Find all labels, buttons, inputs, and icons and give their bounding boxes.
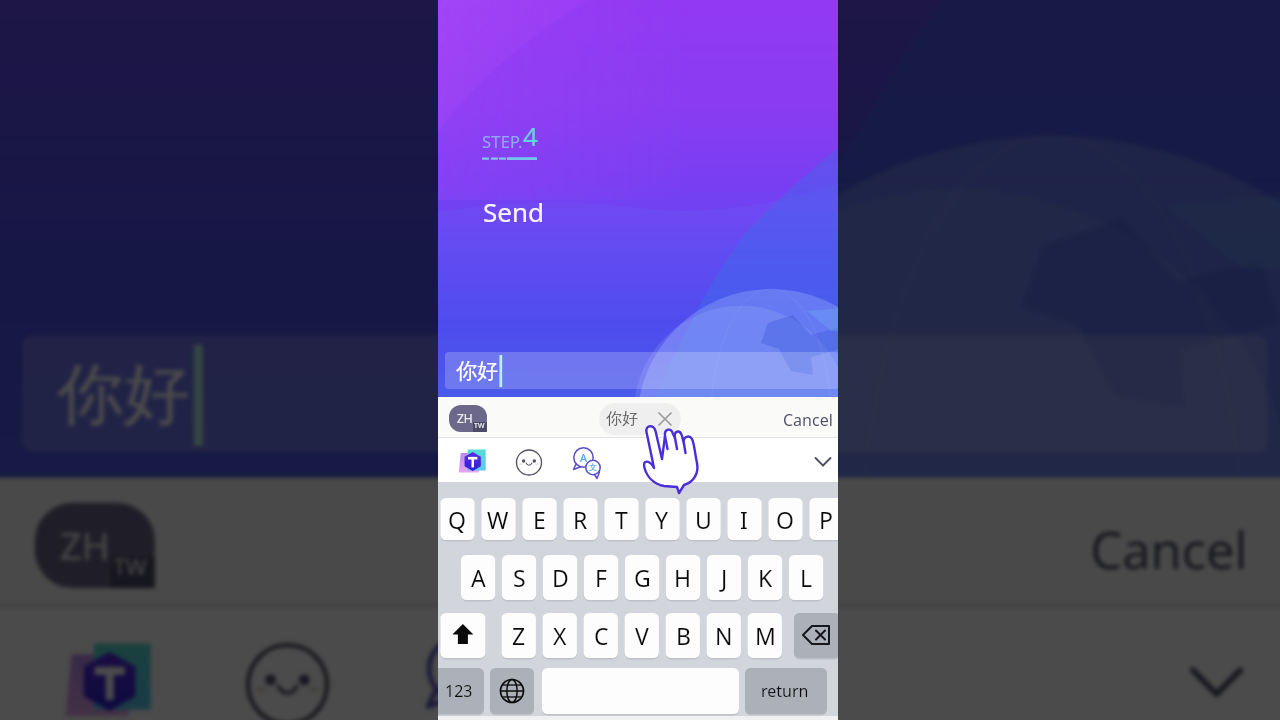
staticText: 你好 — [57, 354, 190, 436]
staticText: N — [715, 620, 733, 651]
button[interactable]: V — [625, 613, 659, 658]
staticText: A — [449, 645, 474, 692]
staticText: I — [740, 504, 748, 535]
button[interactable]: G — [625, 555, 659, 600]
button[interactable]: N — [707, 613, 741, 658]
button[interactable]: E — [522, 498, 556, 540]
staticText: Cancel — [1090, 515, 1248, 585]
button[interactable]: Q — [440, 498, 474, 540]
staticText: A — [580, 450, 588, 465]
button[interactable]: U — [686, 498, 720, 540]
staticText: Y — [655, 504, 669, 535]
button[interactable]: 你好 — [599, 403, 681, 435]
button[interactable]: I — [727, 498, 761, 540]
button[interactable]: K — [748, 555, 782, 600]
staticText: 你好 — [531, 515, 632, 579]
staticText: TW — [114, 553, 149, 585]
button[interactable]: T — [604, 498, 638, 540]
staticText: J — [721, 562, 728, 593]
button[interactable]: Y — [645, 498, 679, 540]
staticText: B — [676, 620, 691, 651]
button[interactable]: B — [666, 613, 700, 658]
staticText: T — [615, 504, 628, 535]
button[interactable]: C — [584, 613, 618, 658]
staticText: X — [553, 620, 567, 651]
button[interactable]: return — [745, 668, 825, 714]
staticText: 文 — [477, 683, 502, 714]
button[interactable]: O — [768, 498, 802, 540]
button[interactable]: Z — [502, 613, 536, 658]
staticText: Send — [483, 194, 544, 229]
staticText: E — [533, 504, 546, 535]
staticText: P — [819, 504, 833, 535]
staticText: O — [776, 504, 794, 535]
button[interactable]: W — [481, 498, 515, 540]
button[interactable]: X — [543, 613, 577, 658]
button[interactable]: P — [809, 498, 838, 540]
staticText: 文 — [589, 462, 597, 472]
staticText: 123 — [445, 680, 473, 702]
button[interactable]: R — [563, 498, 597, 540]
button[interactable]: Cancel — [1090, 515, 1248, 585]
button[interactable]: D — [543, 555, 577, 600]
staticText: R — [573, 504, 588, 535]
staticText: D — [552, 562, 569, 593]
staticText: F — [595, 562, 607, 593]
staticText: K — [758, 562, 773, 593]
staticText: H — [674, 562, 692, 593]
button[interactable]: H — [666, 555, 700, 600]
staticText: Z — [512, 620, 526, 651]
staticText: V — [635, 620, 649, 651]
button[interactable]: A — [461, 555, 495, 600]
staticText: U — [695, 504, 712, 535]
staticText: TW — [474, 421, 485, 431]
staticText: 你好 — [456, 358, 498, 384]
staticText: W — [487, 504, 509, 535]
staticText: A — [471, 562, 486, 593]
staticText: C — [594, 620, 609, 651]
staticText: Q — [448, 504, 466, 535]
staticText: 你好 — [606, 409, 638, 429]
button[interactable]: 123 — [438, 668, 484, 714]
button[interactable]: Language ZH TW — [449, 405, 487, 432]
staticText: G — [634, 562, 651, 593]
staticText: ZH — [457, 410, 473, 426]
button[interactable]: Cancel — [783, 409, 833, 431]
button[interactable]: 你好 — [509, 496, 768, 598]
staticText: 4 — [523, 118, 538, 153]
button[interactable]: S — [502, 555, 536, 600]
staticText: STEP. — [482, 130, 523, 152]
staticText: ZH — [60, 519, 111, 569]
button[interactable]: Language ZH TW — [35, 503, 155, 588]
button[interactable]: M — [748, 613, 782, 658]
staticText: return — [761, 680, 809, 702]
button[interactable]: L — [789, 555, 823, 600]
button[interactable]: J — [707, 555, 741, 600]
staticText: S — [513, 562, 526, 593]
staticText: L — [800, 562, 813, 593]
staticText: M — [755, 620, 776, 651]
staticText: Cancel — [783, 409, 833, 431]
button[interactable]: F — [584, 555, 618, 600]
